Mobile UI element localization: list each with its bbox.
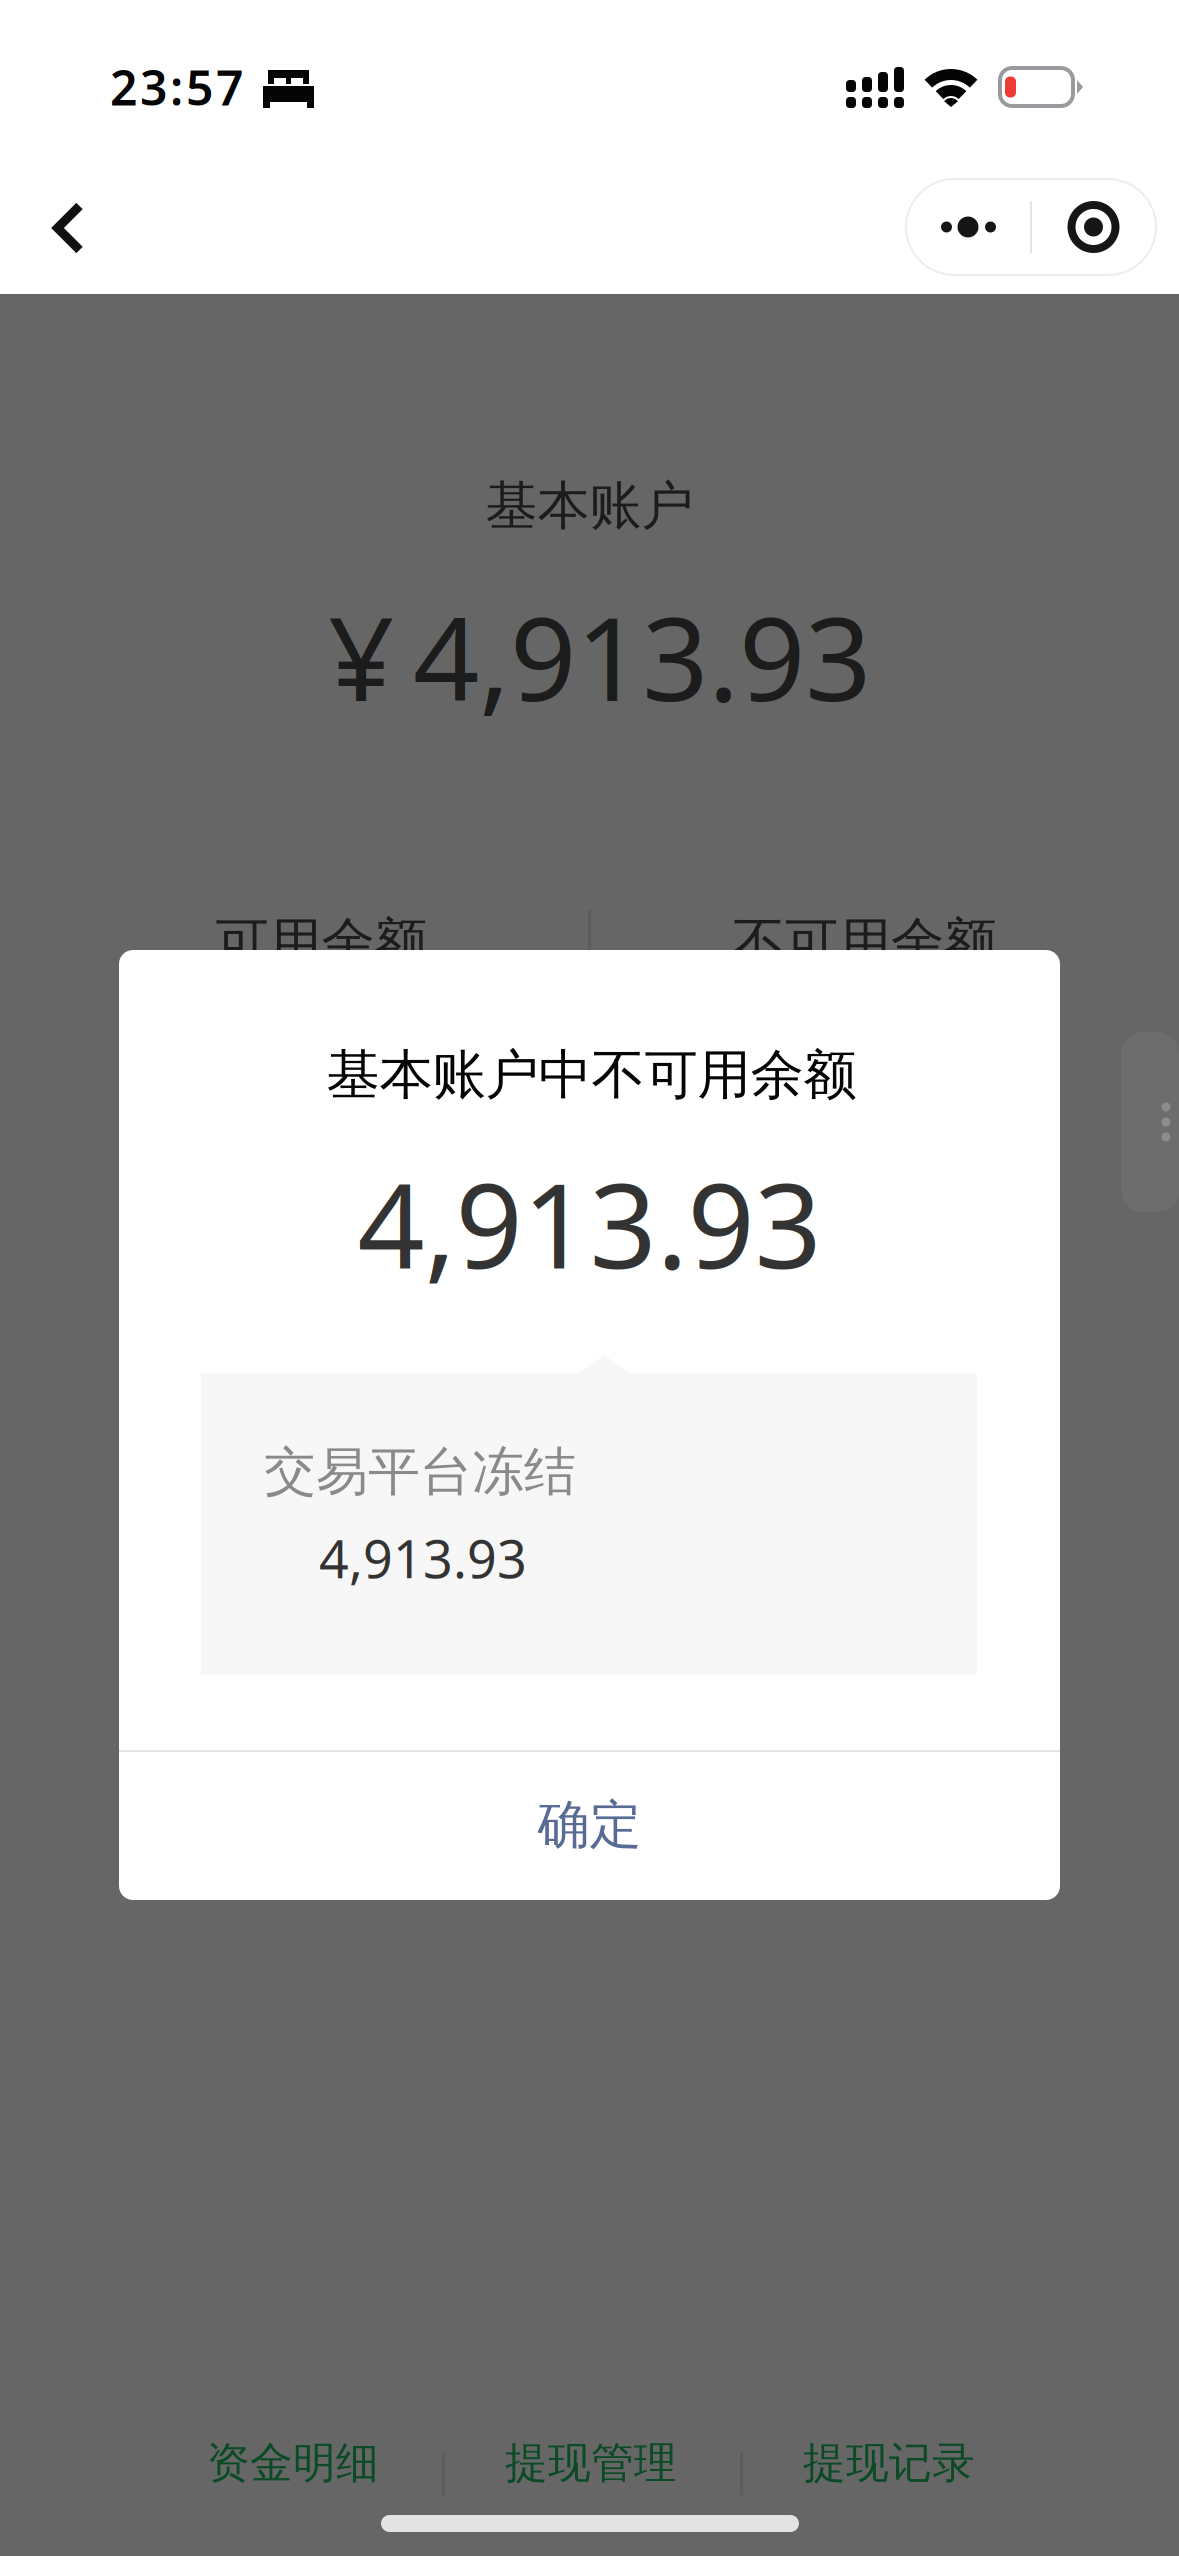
button[interactable]: 确定 <box>119 1749 1060 1901</box>
staticText: 提现记录 <box>803 2437 975 2489</box>
button[interactable]: 提现记录 <box>744 2426 1034 2500</box>
staticText: 确定 <box>537 1793 641 1857</box>
button[interactable]: 提现管理 <box>446 2426 736 2500</box>
button[interactable]: Back <box>0 162 132 294</box>
staticText: 23:57 <box>110 55 243 119</box>
button[interactable]: Floating menu <box>1121 1032 1179 1212</box>
staticText: 提现管理 <box>505 2437 677 2489</box>
button[interactable]: More options <box>906 179 1031 275</box>
staticText: 4,913.93 <box>319 1523 527 1593</box>
staticText: 资金明细 <box>207 2437 379 2489</box>
staticText: 4,913.93 <box>357 1145 821 1301</box>
staticText: 基本账户中不可用余额 <box>326 1042 856 1108</box>
button[interactable]: Close mini program <box>1031 179 1156 275</box>
staticText: 可用余额 <box>215 910 427 976</box>
staticText: ¥ 4,913.93 <box>328 579 871 733</box>
button[interactable]: 资金明细 <box>148 2426 438 2500</box>
staticText: 不可用余额 <box>732 910 997 976</box>
staticText: 基本账户 <box>485 474 693 538</box>
staticText: 交易平台冻结 <box>264 1440 576 1504</box>
